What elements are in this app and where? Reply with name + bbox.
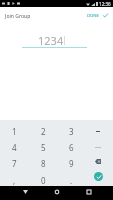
button[interactable]: Home [51, 185, 63, 198]
staticText: 7 [12, 158, 17, 169]
button[interactable]: 7 [0, 152, 29, 169]
staticText: DONE [87, 13, 99, 19]
staticText: 3 [69, 126, 74, 137]
button[interactable]: Enter [85, 169, 113, 186]
staticText: , [13, 175, 16, 186]
button[interactable]: 2 [29, 120, 57, 136]
staticText: 6 [69, 142, 74, 153]
button[interactable]: 1 [0, 120, 29, 136]
button[interactable]: 5 [29, 136, 57, 152]
button[interactable]: Backspace [85, 152, 113, 169]
staticText: 0 [41, 175, 46, 186]
staticText: . [70, 175, 73, 186]
button[interactable]: Recent apps [83, 185, 95, 198]
button[interactable]: 6 [57, 136, 85, 152]
staticText: 9 [69, 158, 74, 169]
staticText: 4 [12, 142, 17, 153]
button[interactable]: Space [85, 136, 113, 152]
button[interactable]: . [57, 169, 85, 186]
button[interactable]: DONE [86, 13, 109, 19]
button[interactable]: Back [19, 185, 31, 198]
staticText: 1 [12, 126, 17, 137]
staticText: 2 [41, 126, 46, 137]
staticText: Join Group [5, 13, 31, 20]
button[interactable]: 0 [29, 169, 57, 186]
staticText: 1234 [38, 33, 64, 48]
staticText: 12:36 [99, 1, 111, 7]
button[interactable]: 8 [29, 152, 57, 169]
button[interactable]: , [0, 169, 29, 186]
button[interactable]: 4 [0, 136, 29, 152]
button[interactable]: 9 [57, 152, 85, 169]
staticText: 5 [41, 142, 46, 153]
button[interactable]: 3 [57, 120, 85, 136]
staticText: 8 [41, 158, 46, 169]
button[interactable]: Minus [85, 120, 113, 136]
